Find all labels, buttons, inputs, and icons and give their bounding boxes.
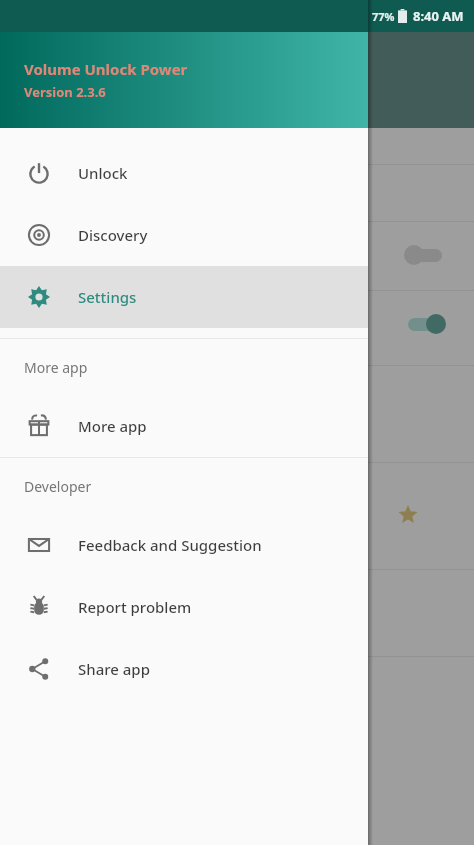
button[interactable]: Unlock: [0, 142, 368, 204]
staticText: Settings: [78, 287, 137, 307]
staticText: Feedback and Suggestion: [78, 535, 262, 555]
button[interactable]: Share app: [0, 638, 368, 700]
staticText: Unlock: [78, 163, 128, 183]
button[interactable]: Discovery: [0, 204, 368, 266]
staticText: More app: [78, 416, 147, 436]
button[interactable]: Feedback and Suggestion: [0, 514, 368, 576]
staticText: Discovery: [78, 225, 148, 245]
staticText: Volume Unlock Power: [24, 59, 188, 79]
staticText: Developer: [24, 477, 92, 496]
staticText: Version 2.3.6: [24, 83, 106, 101]
staticText: 77%: [372, 9, 395, 24]
button[interactable]: Report problem: [0, 576, 368, 638]
staticText: More app: [24, 358, 88, 377]
staticText: 8:40 AM: [413, 7, 464, 25]
button[interactable]: Settings: [0, 266, 368, 328]
staticText: Share app: [78, 659, 150, 679]
staticText: Report problem: [78, 597, 192, 617]
button[interactable]: More app: [0, 395, 368, 457]
